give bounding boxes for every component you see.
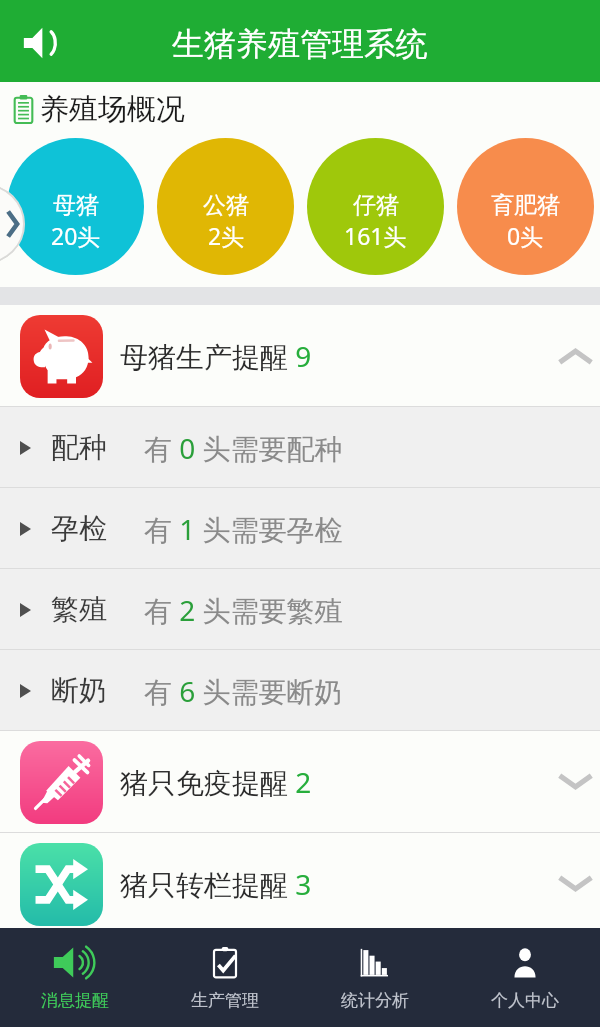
staticText: 0头 xyxy=(507,220,544,251)
button[interactable]: 统计分析 xyxy=(300,928,450,1027)
button[interactable]: 育肥猪 xyxy=(457,138,594,275)
button[interactable]: 孕检 xyxy=(0,488,600,569)
button[interactable]: 公猪 xyxy=(157,138,294,275)
staticText: 个人中心 xyxy=(491,990,559,1011)
button[interactable]: 猪只转栏提醒 3 xyxy=(0,833,600,935)
staticText: 养殖场概况 xyxy=(40,91,185,128)
staticText: 母猪 xyxy=(53,191,99,220)
staticText: 猪只转栏提醒 3 xyxy=(120,865,312,903)
button[interactable]: 母猪生产提醒 9 xyxy=(0,305,600,407)
staticText: 生产管理 xyxy=(191,990,259,1011)
staticText: 161头 xyxy=(344,220,407,251)
button[interactable]: 仔猪 xyxy=(307,138,444,275)
button[interactable]: 母猪 xyxy=(7,138,144,275)
staticText: 猪只免疫提醒 2 xyxy=(120,763,312,801)
staticText: 育肥猪 xyxy=(491,191,560,220)
button[interactable]: Next page xyxy=(0,184,25,264)
staticText: 消息提醒 xyxy=(41,990,109,1011)
staticText: 母猪生产提醒 9 xyxy=(120,337,312,375)
staticText: 繁殖 xyxy=(51,592,107,627)
button[interactable]: 繁殖 xyxy=(0,569,600,650)
staticText: 公猪 xyxy=(203,191,249,220)
staticText: 20头 xyxy=(51,220,101,251)
staticText: 仔猪 xyxy=(353,191,399,220)
staticText: 生猪养殖管理系统 xyxy=(172,24,428,64)
staticText: 配种 xyxy=(51,430,107,465)
button[interactable]: 生产管理 xyxy=(150,928,300,1027)
button[interactable]: 个人中心 xyxy=(450,928,600,1027)
staticText: 统计分析 xyxy=(341,990,409,1011)
staticText: 有 0 头需要配种 xyxy=(144,429,343,467)
button[interactable]: 断奶 xyxy=(0,650,600,731)
staticText: 断奶 xyxy=(51,673,107,708)
button[interactable]: 配种 xyxy=(0,407,600,488)
staticText: 有 6 头需要断奶 xyxy=(144,672,343,710)
staticText: 孕检 xyxy=(51,511,107,546)
button[interactable]: Announcements xyxy=(16,17,64,65)
button[interactable]: 消息提醒 xyxy=(0,928,150,1027)
staticText: 有 2 头需要繁殖 xyxy=(144,591,343,629)
staticText: 2头 xyxy=(208,220,245,251)
button[interactable]: 猪只免疫提醒 2 xyxy=(0,731,600,833)
staticText: 有 1 头需要孕检 xyxy=(144,510,343,548)
